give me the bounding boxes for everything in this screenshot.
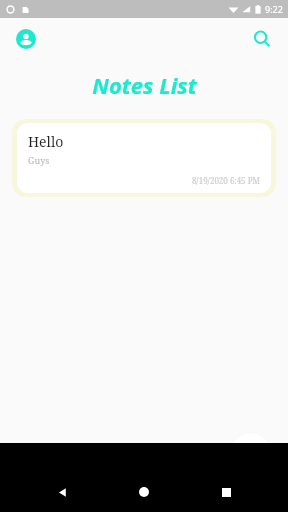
button[interactable]: Search	[248, 25, 276, 53]
staticText: 9:22	[265, 3, 283, 15]
button[interactable]: Recent apps	[206, 472, 246, 512]
button[interactable]: Add note	[231, 433, 271, 473]
button[interactable]: Hello	[17, 123, 271, 193]
staticText: Hello	[28, 132, 64, 151]
button[interactable]: Home	[124, 472, 164, 512]
button[interactable]: Account	[12, 25, 40, 53]
button[interactable]: Back	[42, 472, 82, 512]
staticText: 8/19/2020 6:45 PM	[28, 175, 260, 186]
staticText: Guys	[28, 154, 50, 166]
staticText: Notes List	[92, 70, 197, 100]
